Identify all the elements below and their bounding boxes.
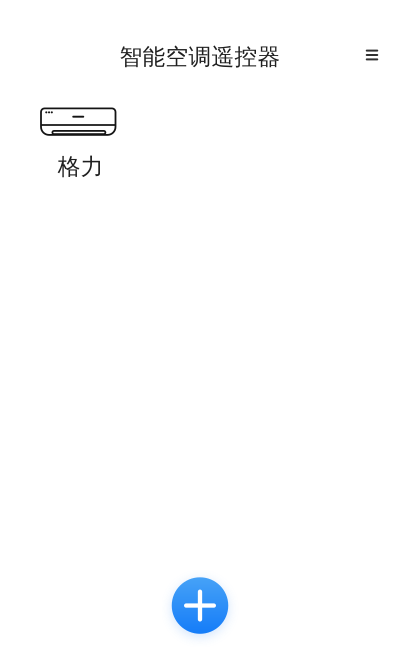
button[interactable]: 格力 bbox=[41, 108, 115, 181]
button[interactable]: Menu bbox=[350, 33, 394, 77]
button[interactable]: Add device bbox=[172, 577, 228, 634]
staticText: 智能空调遥控器 bbox=[119, 43, 280, 71]
staticText: 格力 bbox=[58, 153, 104, 181]
